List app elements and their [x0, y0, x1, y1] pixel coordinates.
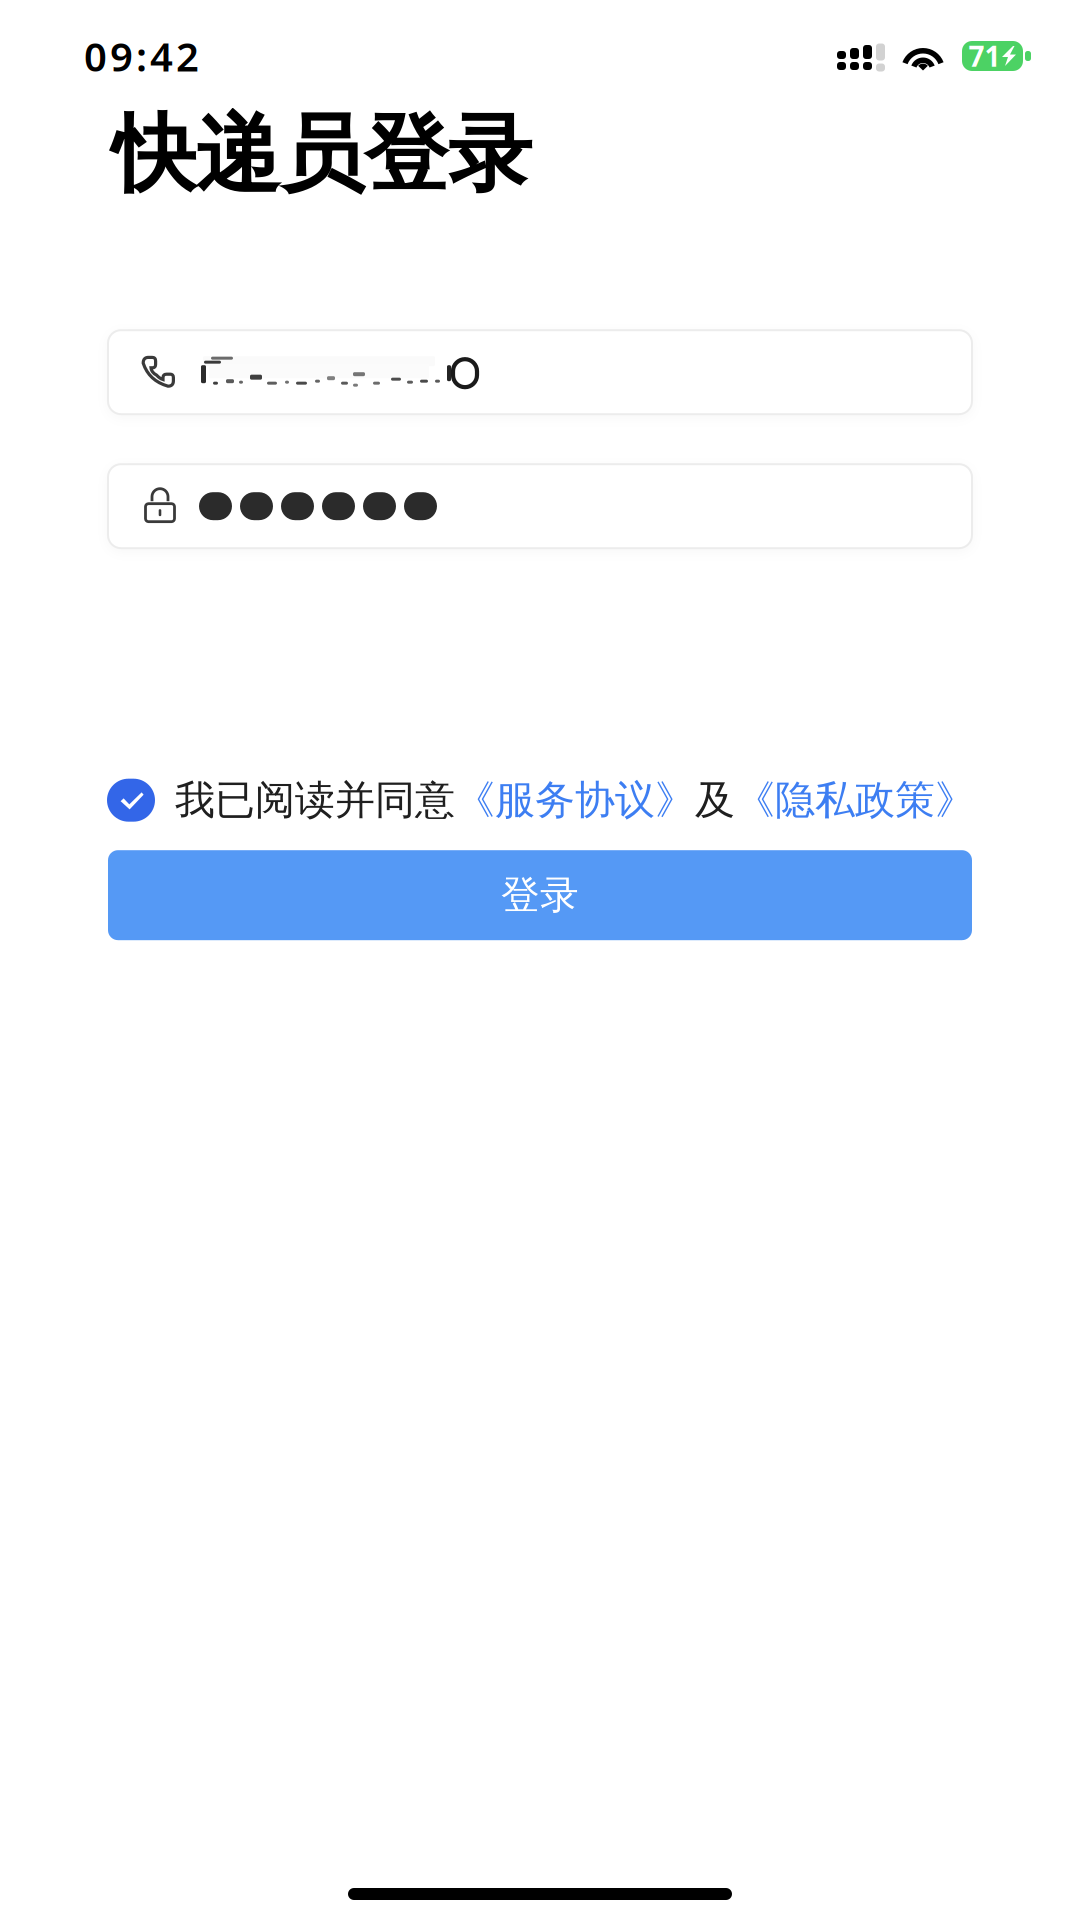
- staticText: 71: [968, 37, 1000, 75]
- staticText: 《服务协议》: [455, 776, 695, 825]
- button[interactable]: 《服务协议》: [455, 776, 695, 825]
- button[interactable]: 密码: [108, 464, 972, 548]
- button[interactable]: 手机号: [108, 330, 972, 414]
- staticText: 登录: [501, 871, 579, 919]
- button[interactable]: 《隐私政策》: [735, 776, 975, 825]
- staticText: 快递员登录: [112, 103, 532, 206]
- staticText: 《隐私政策》: [735, 776, 975, 825]
- staticText: 及: [695, 776, 735, 825]
- staticText: 09:42: [84, 29, 199, 82]
- button[interactable]: 登录: [108, 850, 972, 940]
- staticText: 我已阅读并同意: [175, 776, 455, 825]
- button[interactable]: 我已阅读并同意服务协议及隐私政策: [107, 777, 155, 823]
